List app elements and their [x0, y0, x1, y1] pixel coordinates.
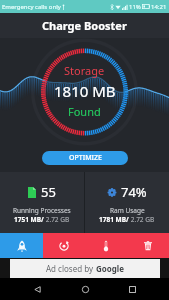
- button[interactable]: Boost: [0, 233, 43, 258]
- staticText: Emergency calls only: [2, 3, 61, 11]
- button[interactable]: 74%: [85, 172, 169, 233]
- staticText: Storage: [64, 63, 105, 78]
- button[interactable]: CPU Cooler: [43, 233, 85, 258]
- staticText: 1751 MB/: [14, 215, 44, 224]
- staticText: 2.72 GB: [129, 215, 155, 224]
- staticText: Ad closed by: [46, 263, 96, 274]
- button[interactable]: Ad closed by: [10, 259, 160, 278]
- staticText: Ram Usage: [110, 206, 145, 215]
- staticText: Google: [96, 263, 125, 274]
- staticText: Running Processes: [13, 206, 71, 215]
- staticText: OPTIMIZE: [69, 153, 102, 163]
- staticText: 74%: [121, 183, 147, 201]
- staticText: 1781 MB/: [99, 215, 129, 224]
- staticText: 14:21: [151, 3, 167, 11]
- staticText: 2.72 GB: [44, 215, 70, 224]
- button[interactable]: Recent apps: [122, 279, 142, 299]
- staticText: 55: [41, 183, 56, 201]
- staticText: 1810 MB: [54, 81, 116, 101]
- button[interactable]: Back: [27, 279, 47, 299]
- staticText: 11%: [129, 3, 141, 11]
- button[interactable]: OPTIMIZE: [42, 151, 128, 165]
- button[interactable]: 55: [0, 172, 84, 233]
- button[interactable]: Home: [75, 279, 95, 299]
- staticText: Charge Booster: [42, 18, 127, 33]
- button[interactable]: Junk Cleaner: [127, 233, 169, 258]
- button[interactable]: Temperature: [85, 233, 127, 258]
- staticText: Found: [68, 104, 101, 119]
